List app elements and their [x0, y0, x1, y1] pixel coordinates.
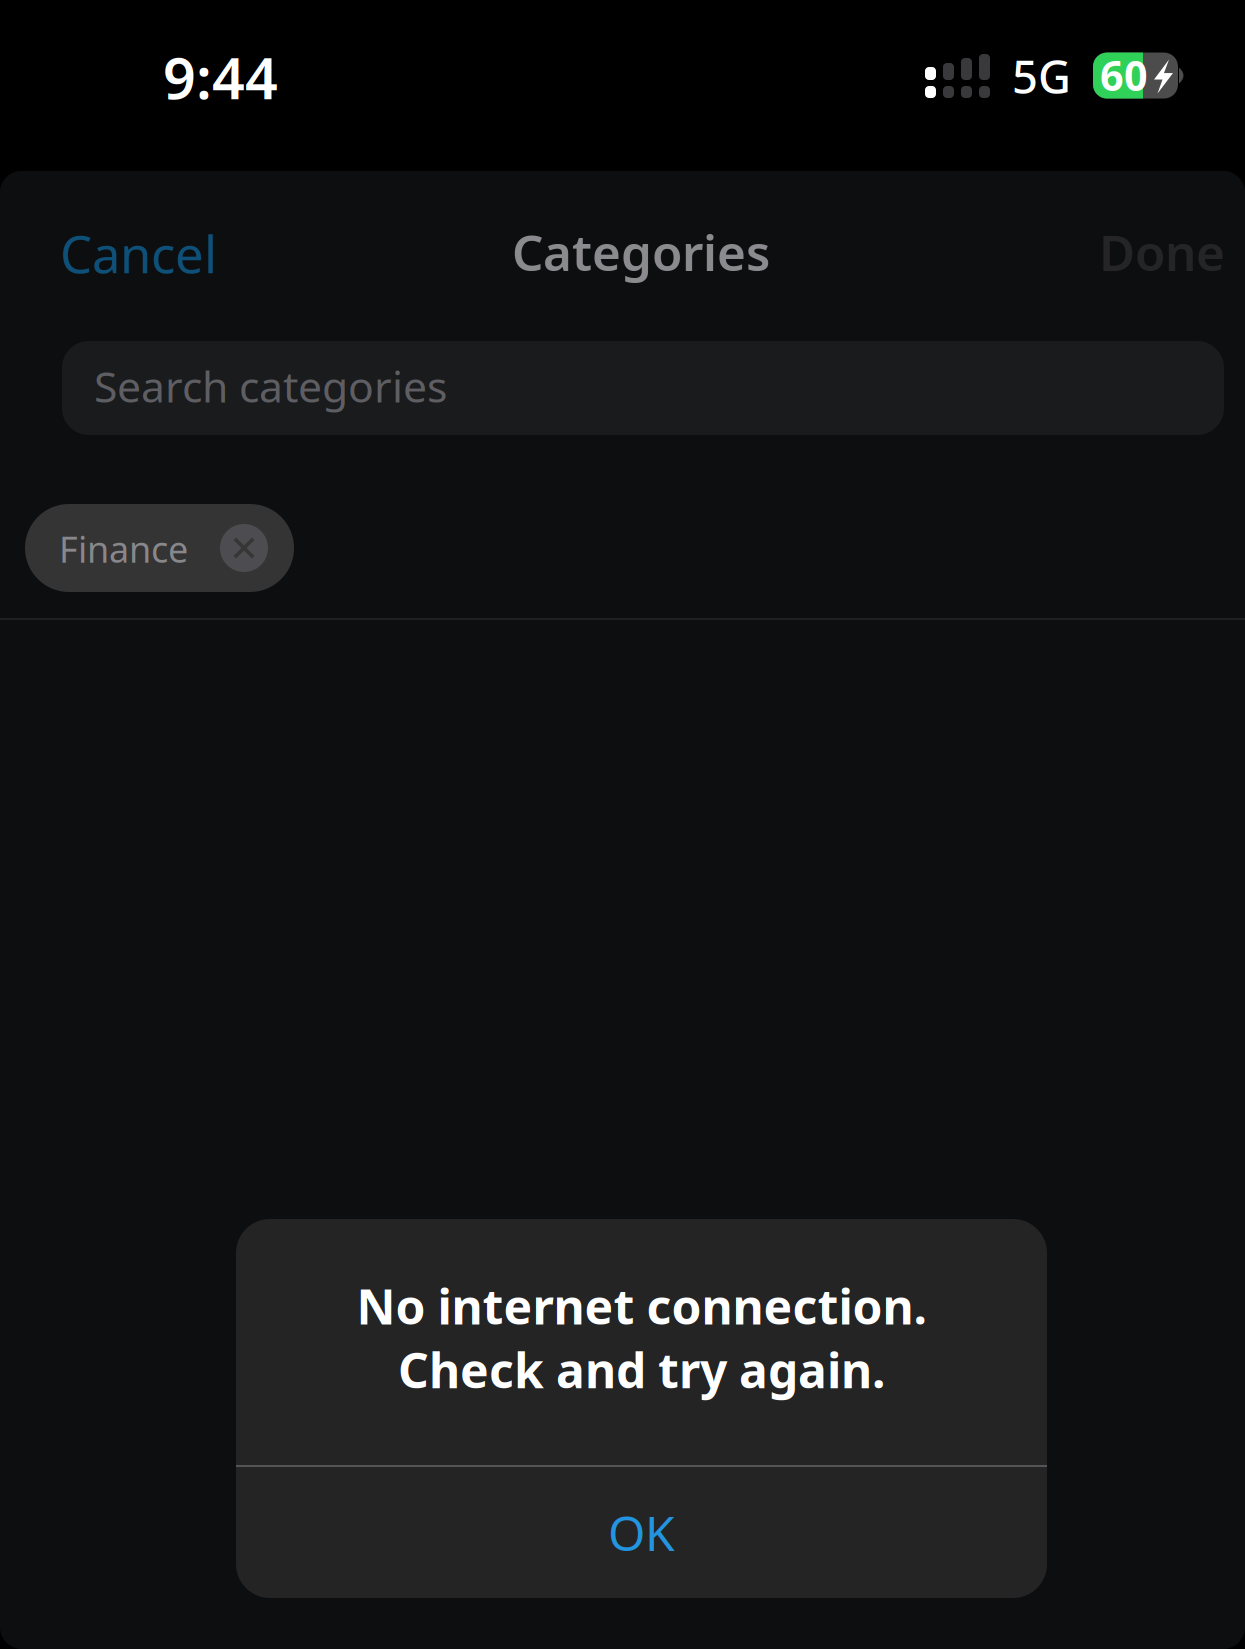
staticText: Done: [1099, 219, 1225, 284]
button[interactable]: Finance: [25, 504, 294, 592]
staticText: Cancel: [60, 220, 217, 287]
staticText: Finance: [59, 525, 188, 573]
button[interactable]: Search categories: [62, 341, 1224, 435]
staticText: 60: [1100, 48, 1148, 102]
staticText: Categories: [512, 219, 770, 284]
button[interactable]: Remove Finance: [220, 524, 268, 572]
staticText: 5G: [1012, 46, 1071, 106]
button[interactable]: Done: [1087, 201, 1237, 302]
staticText: OK: [608, 1501, 675, 1564]
staticText: 9:44: [163, 39, 278, 115]
button[interactable]: Categories: [500, 201, 782, 302]
staticText: Check and try again.: [398, 1338, 885, 1401]
button[interactable]: OK: [236, 1467, 1047, 1598]
button[interactable]: Cancel: [48, 202, 229, 305]
staticText: No internet connection.: [356, 1274, 926, 1338]
staticText: Search categories: [94, 358, 447, 414]
